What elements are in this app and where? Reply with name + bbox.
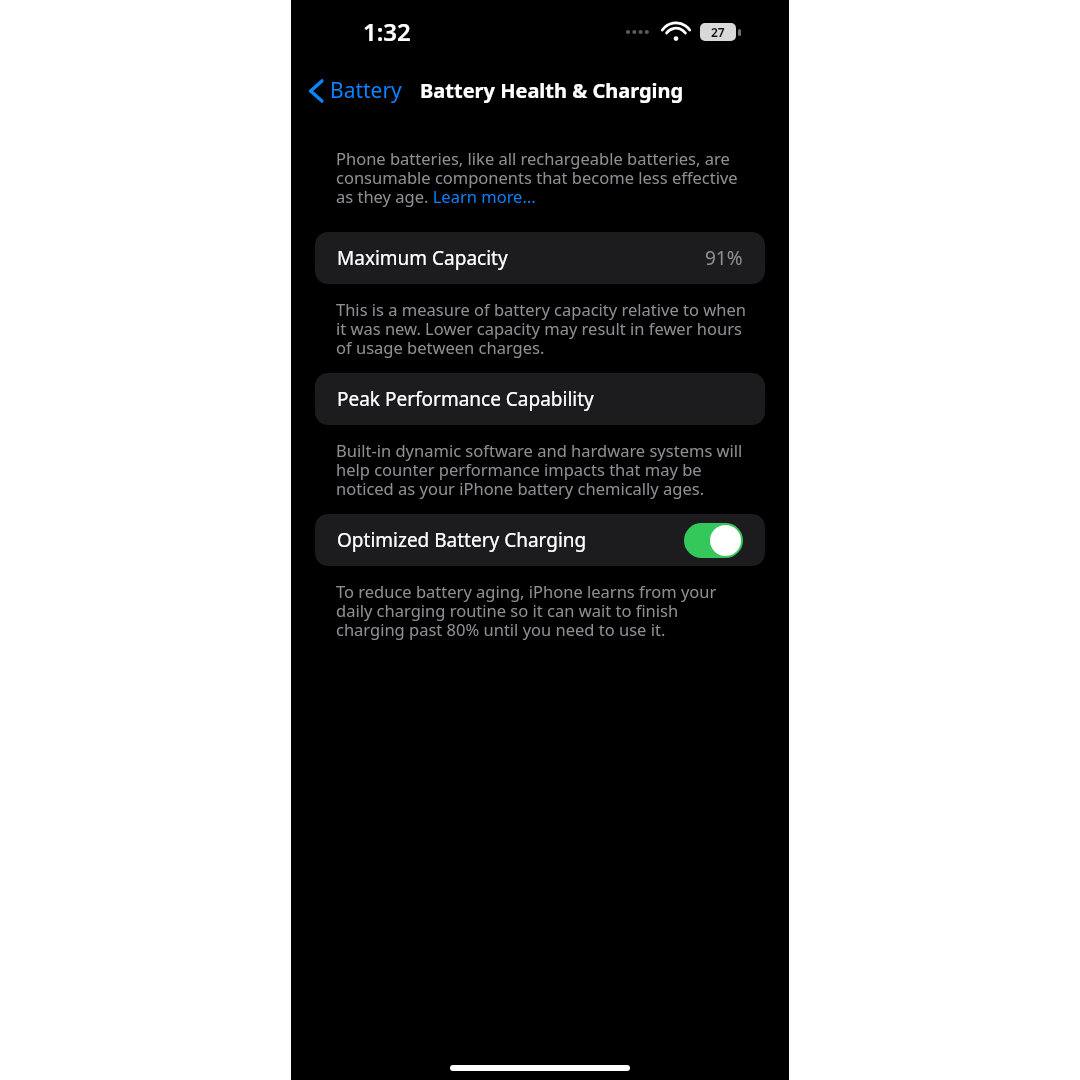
button[interactable]: Peak Performance Capability xyxy=(315,373,765,425)
button[interactable]: Optimized Battery Charging toggle, on xyxy=(684,523,743,558)
staticText: 1:32 xyxy=(363,15,411,48)
staticText: This is a measure of battery capacity re… xyxy=(336,298,751,359)
staticText: 91% xyxy=(705,245,743,271)
button[interactable]: Optimized Battery Charging xyxy=(315,514,765,566)
staticText: Optimized Battery Charging xyxy=(337,527,587,553)
button[interactable]: Maximum Capacity xyxy=(315,232,765,284)
button[interactable]: Battery xyxy=(303,72,408,109)
staticText: Battery Health & Charging xyxy=(420,77,684,104)
staticText: Built-in dynamic software and hardware s… xyxy=(336,439,751,500)
staticText: Peak Performance Capability xyxy=(337,386,594,412)
staticText: To reduce battery aging, iPhone learns f… xyxy=(336,580,751,641)
staticText: Maximum Capacity xyxy=(337,245,508,271)
staticText: 27 xyxy=(711,24,725,40)
staticText: Battery xyxy=(330,76,402,105)
staticText: Phone batteries, like all rechargeable b… xyxy=(336,147,753,208)
